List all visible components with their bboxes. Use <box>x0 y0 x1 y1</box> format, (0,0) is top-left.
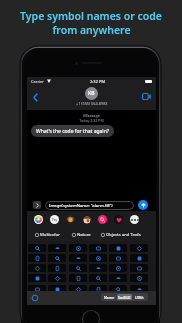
button[interactable]: Symbol <box>130 274 148 282</box>
button[interactable]: App 6 <box>130 215 139 224</box>
button[interactable]: Apps <box>33 201 41 209</box>
staticText: 2:32 PM <box>90 79 106 84</box>
staticText: Multicolor <box>40 232 60 238</box>
button[interactable]: Symbol <box>130 295 148 303</box>
button[interactable]: Symbol <box>48 254 66 262</box>
button[interactable]: Send <box>138 200 148 210</box>
button[interactable]: Symbol <box>130 244 148 252</box>
button[interactable]: KB <box>85 87 98 100</box>
button[interactable]: What's the code for that again? <box>36 125 109 137</box>
button[interactable]: App 3 <box>82 215 91 224</box>
button[interactable]: Symbol <box>89 274 107 282</box>
button[interactable]: Symbol <box>89 285 107 293</box>
staticText: Type symbol names or code <box>20 9 162 23</box>
button[interactable]: Favorites <box>31 294 39 302</box>
button[interactable]: App 2 <box>66 215 75 224</box>
button[interactable]: Symbol <box>28 295 46 303</box>
button[interactable]: Symbol <box>109 254 127 262</box>
button[interactable]: Symbol <box>109 244 127 252</box>
button[interactable]: Symbol <box>48 285 66 293</box>
button[interactable]: Symbol <box>28 254 46 262</box>
staticText: Name <box>104 295 115 300</box>
button[interactable]: App 1 <box>50 215 59 224</box>
button[interactable]: Symbol <box>48 244 66 252</box>
button[interactable]: Symbol <box>109 295 127 303</box>
staticText: Pay <box>52 218 58 222</box>
button[interactable]: Symbol <box>28 264 46 272</box>
button[interactable]: App 0 <box>34 215 43 224</box>
button[interactable]: Back <box>30 92 40 102</box>
button[interactable]: Symbol <box>130 285 148 293</box>
button[interactable]: Symbol <box>28 244 46 252</box>
staticText: Carrier <box>31 79 45 84</box>
staticText: SwiftUI <box>118 295 131 300</box>
button[interactable]: Image(systemName: "alarm.fill") <box>49 201 132 210</box>
button[interactable]: Symbol <box>89 244 107 252</box>
button[interactable]: Symbol <box>69 274 87 282</box>
button[interactable]: Symbol <box>130 264 148 272</box>
button[interactable]: Nature <box>72 232 91 238</box>
button[interactable]: SwiftUI <box>117 294 132 300</box>
button[interactable]: Symbol <box>89 264 107 272</box>
staticText: iMessage <box>27 113 156 118</box>
staticText: from anywhere <box>52 23 131 37</box>
button[interactable]: Symbol <box>109 274 127 282</box>
button[interactable]: Home <box>82 310 100 323</box>
button[interactable]: App 5 <box>114 215 123 224</box>
staticText: Today 2:32 PM <box>27 118 156 123</box>
button[interactable]: Symbol <box>28 274 46 282</box>
button[interactable]: Symbol <box>69 244 87 252</box>
button[interactable]: Symbol <box>48 274 66 282</box>
button[interactable]: Symbol <box>28 285 46 293</box>
button[interactable]: UIKit <box>132 294 147 300</box>
staticText: Image(systemName: "alarm.fill") <box>49 203 113 209</box>
staticText: What's the code for that again? <box>36 128 109 135</box>
staticText: UIKit <box>135 295 144 300</box>
button[interactable]: Symbol <box>69 264 87 272</box>
button[interactable]: Symbol <box>48 264 66 272</box>
button[interactable]: App 4 <box>98 215 107 224</box>
button[interactable]: Name <box>102 294 117 300</box>
staticText: KB <box>88 90 95 97</box>
button[interactable]: Symbol <box>109 285 127 293</box>
button[interactable]: Symbol <box>109 264 127 272</box>
button[interactable]: Symbol <box>89 254 107 262</box>
staticText: Nature <box>77 232 91 238</box>
staticText: Objects and Tools <box>106 232 141 238</box>
button[interactable]: Objects and Tools <box>101 232 141 238</box>
button[interactable]: Symbol <box>69 254 87 262</box>
button[interactable]: Multicolor <box>35 232 60 238</box>
button[interactable]: Symbol <box>69 285 87 293</box>
button[interactable]: Symbol <box>130 254 148 262</box>
staticText: +1 (555) 564-8983 <box>76 101 108 106</box>
button[interactable]: FaceTime video <box>141 91 152 102</box>
button[interactable]: Symbol <box>89 295 107 303</box>
